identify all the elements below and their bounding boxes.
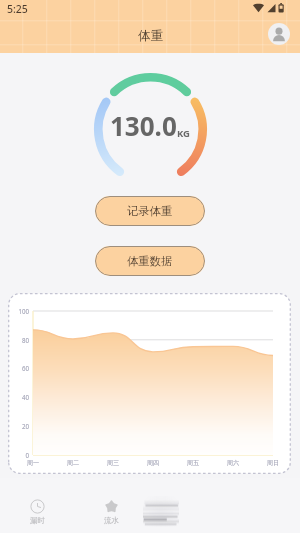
staticText: 100	[9, 307, 29, 315]
staticText: 60	[9, 364, 29, 372]
staticText: 记录体重	[127, 204, 173, 218]
staticText: 周二	[61, 459, 85, 467]
staticText: KG	[177, 127, 190, 140]
staticText: 5:25	[7, 2, 28, 16]
button[interactable]: 流水	[91, 499, 131, 525]
staticText: 周四	[141, 459, 165, 467]
staticText: 周六	[221, 459, 245, 467]
staticText: 体重数据	[127, 254, 173, 268]
button[interactable]: 记录体重	[95, 196, 205, 226]
staticText: 0	[9, 451, 29, 459]
staticText: 40	[9, 393, 29, 401]
button[interactable]: More	[143, 496, 179, 527]
staticText: 漏时	[30, 516, 45, 525]
button[interactable]: 体重数据	[95, 246, 205, 276]
staticText: 周三	[101, 459, 125, 467]
staticText: 20	[9, 422, 29, 430]
staticText: 体重	[138, 28, 163, 44]
staticText: 周一	[21, 459, 45, 467]
button[interactable]: Profile	[268, 23, 290, 45]
button[interactable]: 漏时	[17, 499, 57, 525]
staticText: 130.0	[110, 108, 177, 143]
staticText: 80	[9, 336, 29, 344]
staticText: 流水	[104, 516, 119, 525]
staticText: 周五	[181, 459, 205, 467]
staticText: 周日	[261, 459, 285, 467]
